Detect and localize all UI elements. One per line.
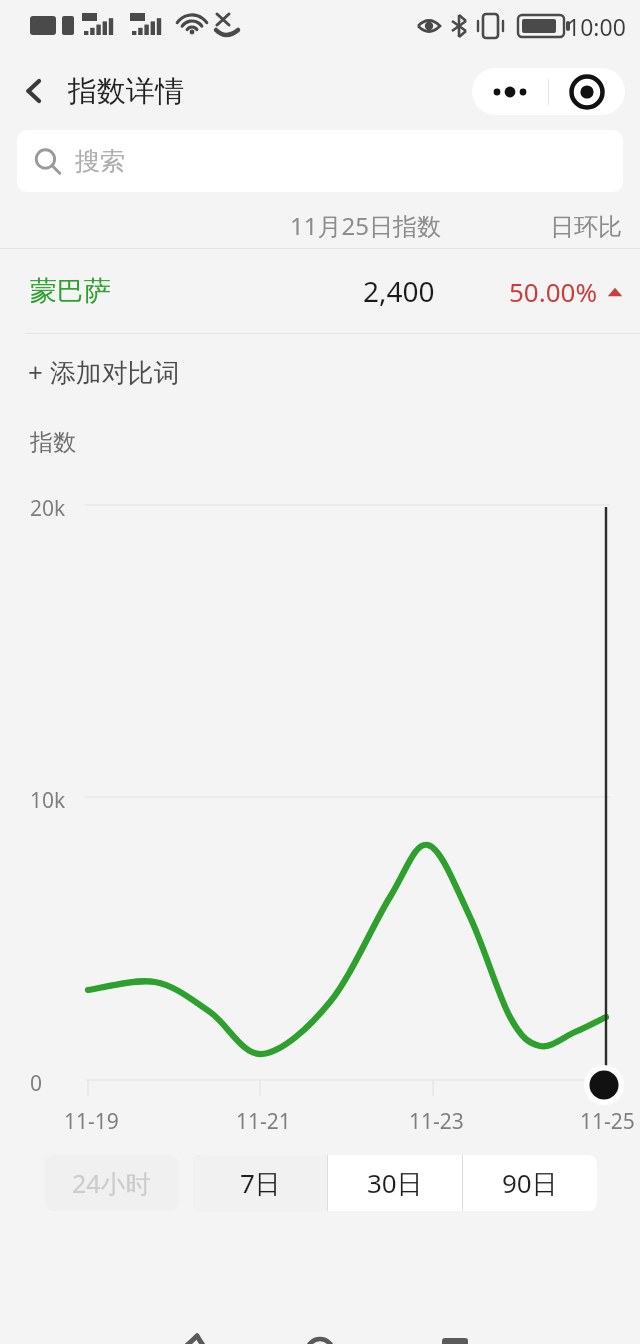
staticText: 指数: [30, 428, 76, 457]
button[interactable]: 蒙巴萨: [0, 249, 640, 333]
staticText: 11-21: [236, 1107, 291, 1136]
staticText: 20k: [30, 494, 66, 523]
staticText: 7日: [240, 1165, 281, 1201]
staticText: + 添加对比词: [28, 354, 180, 390]
button[interactable]: Target: [549, 68, 625, 115]
button[interactable]: 搜索: [17, 130, 623, 192]
button[interactable]: 24小时: [45, 1155, 178, 1211]
staticText: 11月25日指数: [290, 209, 441, 242]
staticText: 蒙巴萨: [30, 274, 111, 308]
button[interactable]: + 添加对比词: [0, 334, 640, 410]
staticText: 2,400: [363, 272, 435, 310]
staticText: 0: [30, 1069, 43, 1098]
button[interactable]: 30日: [328, 1155, 462, 1211]
staticText: 指数详情: [68, 73, 184, 110]
staticText: 24小时: [72, 1166, 151, 1200]
staticText: 10:00: [567, 11, 626, 42]
staticText: 日环比: [550, 212, 622, 242]
staticText: 搜索: [75, 146, 125, 177]
staticText: 10k: [30, 786, 66, 815]
staticText: 11-19: [64, 1107, 119, 1136]
staticText: 11-25: [580, 1107, 635, 1136]
staticText: 90日: [502, 1165, 558, 1201]
staticText: 50.00%: [509, 274, 598, 309]
staticText: 30日: [367, 1165, 423, 1201]
staticText: 11-23: [409, 1107, 464, 1136]
button[interactable]: 90日: [463, 1155, 597, 1211]
button[interactable]: 7日: [193, 1155, 327, 1211]
button[interactable]: Back: [10, 67, 58, 115]
button[interactable]: More options: [472, 68, 548, 115]
